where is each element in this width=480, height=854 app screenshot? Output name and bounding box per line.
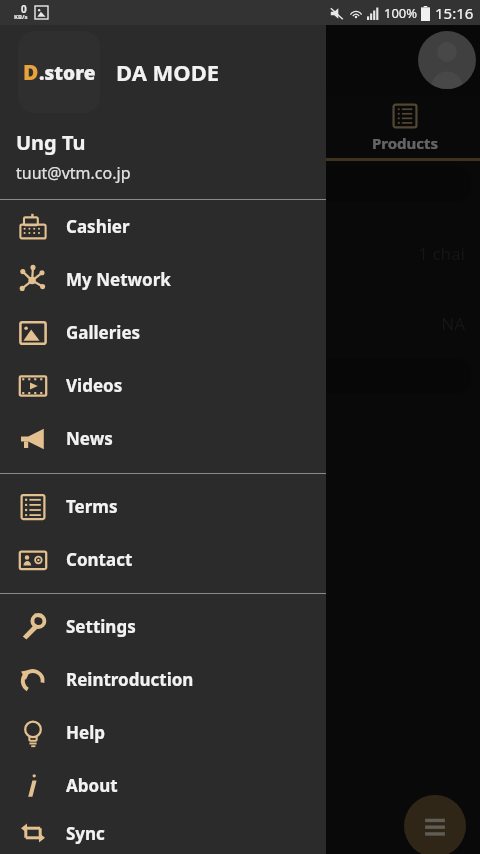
- staticText: About: [66, 774, 118, 797]
- staticText: 100%: [384, 4, 418, 22]
- button[interactable]: Terms: [0, 480, 326, 533]
- button[interactable]: My Network: [0, 253, 326, 306]
- button[interactable]: Galleries: [0, 306, 326, 359]
- button[interactable]: Settings: [0, 600, 326, 653]
- staticText: Settings: [66, 615, 136, 638]
- staticText: Help: [66, 721, 105, 744]
- staticText: Videos: [66, 374, 123, 397]
- button[interactable]: Videos: [0, 359, 326, 412]
- staticText: Reintroduction: [66, 668, 194, 691]
- staticText: Galleries: [66, 321, 141, 344]
- staticText: News: [66, 427, 113, 450]
- staticText: Ung Tu: [16, 129, 86, 156]
- button[interactable]: Profile: [418, 31, 476, 89]
- staticText: 0: [21, 2, 27, 16]
- staticText: D: [23, 58, 39, 87]
- button[interactable]: Reintroduction: [0, 653, 326, 706]
- staticText: .store: [39, 60, 96, 86]
- button[interactable]: Menu: [404, 795, 466, 854]
- staticText: Cashier: [66, 215, 130, 238]
- button[interactable]: Sync: [0, 812, 326, 854]
- button[interactable]: Contact: [0, 533, 326, 586]
- staticText: Terms: [66, 495, 118, 518]
- button[interactable]: Products: [330, 95, 480, 160]
- staticText: Products: [372, 133, 439, 153]
- button[interactable]: Cashier: [0, 200, 326, 253]
- staticText: My Network: [66, 268, 171, 291]
- staticText: DA MODE: [116, 57, 220, 87]
- button[interactable]: About: [0, 759, 326, 812]
- button[interactable]: News: [0, 412, 326, 465]
- staticText: Contact: [66, 548, 133, 571]
- staticText: KB/s: [14, 13, 28, 21]
- staticText: tuut@vtm.co.jp: [16, 162, 131, 184]
- staticText: Sync: [66, 822, 105, 845]
- button[interactable]: Help: [0, 706, 326, 759]
- staticText: 15:16: [435, 3, 474, 23]
- staticText: NA: [300, 312, 465, 335]
- staticText: 1 chai: [300, 242, 465, 265]
